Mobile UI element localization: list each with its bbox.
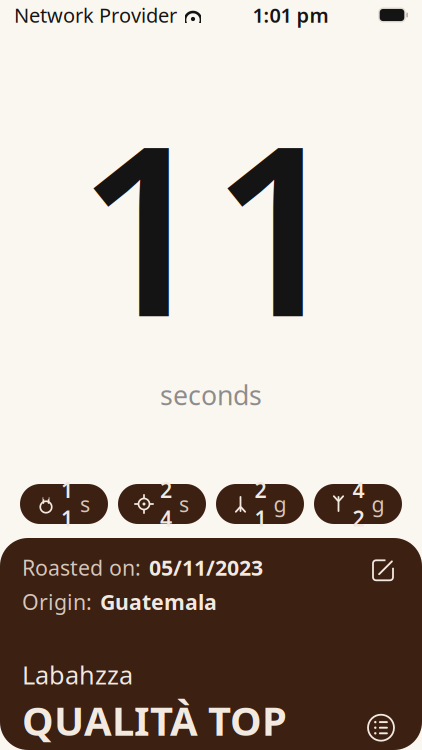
staticText: Roasted on: [22, 553, 141, 582]
button[interactable]: 42 [314, 484, 402, 524]
staticText: s [80, 490, 90, 518]
staticText: 24 [160, 476, 172, 532]
staticText: 42 [352, 476, 364, 532]
staticText: Guatemala [100, 588, 217, 616]
button[interactable]: 24 [118, 484, 206, 524]
staticText: s [179, 490, 189, 518]
button[interactable]: 21 [216, 484, 304, 524]
staticText: 21 [254, 476, 266, 532]
staticText: seconds [160, 377, 262, 412]
staticText: QUALITÀ TOP [22, 694, 287, 747]
button[interactable]: Bean list [362, 709, 400, 747]
staticText: 1:01 pm [252, 2, 328, 28]
staticText: 11 [61, 476, 73, 532]
staticText: Labahzza [22, 658, 133, 692]
button[interactable]: Edit bean details [366, 553, 400, 587]
staticText: Origin: [22, 588, 92, 616]
staticText: 11 [77, 69, 345, 381]
staticText: g [371, 490, 384, 518]
button[interactable]: 11 [20, 484, 108, 524]
staticText: 05/11/2023 [149, 553, 263, 582]
staticText: Network Provider [14, 2, 177, 28]
staticText: g [273, 490, 286, 518]
